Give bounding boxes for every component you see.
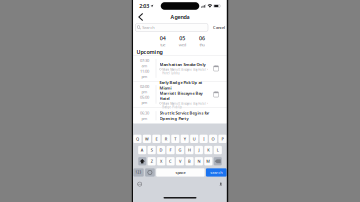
button[interactable]: T — [171, 135, 179, 143]
staticText: 06:30 — [140, 110, 149, 116]
button[interactable]: I — [200, 135, 208, 143]
staticText: tue — [160, 42, 165, 47]
button[interactable]: space — [156, 168, 205, 177]
button[interactable]: U — [190, 135, 198, 143]
staticText: search — [210, 170, 222, 175]
staticText: wed — [179, 42, 186, 47]
button[interactable]: Z — [148, 157, 156, 165]
staticText: Search — [142, 25, 154, 30]
staticText: space — [175, 170, 185, 175]
button[interactable]: S — [148, 146, 156, 154]
button[interactable]: P — [218, 135, 227, 143]
button[interactable]: Y — [181, 135, 189, 143]
button[interactable]: Dictate — [219, 182, 223, 186]
button[interactable]: 05 — [176, 34, 189, 47]
button[interactable]: Change keyboard — [137, 182, 142, 187]
staticText: Miami Marriott Biscayne Bay Hotel • Hote… — [162, 68, 208, 75]
button[interactable]: F — [166, 146, 175, 154]
staticText: am — [142, 63, 148, 68]
staticText: S — [151, 147, 153, 153]
staticText: Y — [184, 136, 186, 141]
button[interactable]: 06 — [195, 34, 208, 47]
button[interactable]: C — [166, 157, 175, 165]
staticText: pm — [142, 89, 148, 94]
staticText: Shuttle Service Begins for Opening Party — [159, 110, 209, 121]
button[interactable]: K — [204, 146, 212, 154]
staticText: U — [193, 136, 196, 141]
button[interactable]: 07:30 — [133, 55, 227, 81]
staticText: 05:00 — [140, 94, 149, 100]
staticText: pm — [142, 100, 148, 105]
staticText: D — [160, 147, 163, 153]
button[interactable]: D — [157, 146, 165, 154]
button[interactable]: 04 — [156, 34, 169, 47]
staticText: R — [165, 136, 167, 141]
button[interactable]: E — [152, 135, 160, 143]
staticText: pm — [142, 116, 148, 121]
staticText: Manhattan Smoke Only — [159, 62, 205, 67]
button[interactable]: B — [185, 157, 193, 165]
staticText: H — [188, 147, 191, 153]
staticText: 02:00 — [140, 84, 149, 89]
staticText: Z — [151, 159, 153, 164]
staticText: C — [169, 159, 172, 164]
button[interactable]: V — [176, 157, 184, 165]
staticText: N — [197, 159, 200, 164]
staticText: B — [188, 159, 191, 164]
button[interactable]: Cancel — [213, 25, 225, 30]
staticText: G — [178, 147, 181, 153]
staticText: 05 — [179, 35, 185, 42]
button[interactable]: Back — [136, 12, 145, 22]
staticText: L — [217, 147, 219, 153]
button[interactable]: H — [185, 146, 193, 154]
staticText: V — [179, 159, 181, 164]
staticText: T — [174, 136, 176, 141]
staticText: Cancel — [213, 25, 225, 30]
button[interactable]: W — [143, 135, 151, 143]
button[interactable]: 123 — [133, 168, 144, 177]
button[interactable]: N — [195, 157, 203, 165]
staticText: thu — [199, 42, 204, 47]
staticText: J — [198, 147, 199, 153]
staticText: O — [212, 136, 215, 141]
button[interactable]: Q — [133, 135, 141, 143]
button[interactable]: L — [214, 146, 222, 154]
button[interactable]: G — [176, 146, 184, 154]
button[interactable]: M — [204, 157, 212, 165]
staticText: Early Badge Pick Up at Miami Marriott Bi… — [159, 80, 202, 101]
button[interactable]: Emoji — [145, 168, 155, 177]
staticText: 04 — [160, 35, 166, 42]
staticText: 2:03 — [139, 2, 149, 10]
staticText: W — [145, 136, 149, 141]
staticText: pm — [142, 74, 148, 79]
button[interactable]: A — [138, 146, 146, 154]
button[interactable]: Shift — [138, 157, 146, 165]
staticText: Agenda — [170, 13, 189, 21]
button[interactable]: search — [206, 168, 227, 177]
staticText: 123 — [136, 171, 142, 174]
staticText: 11:00 — [140, 68, 149, 74]
staticText: E — [155, 136, 157, 141]
staticText: F — [170, 147, 172, 153]
staticText: 06 — [199, 35, 205, 42]
staticText: Q — [136, 136, 139, 141]
staticText: X — [160, 159, 162, 164]
staticText: A — [141, 147, 144, 153]
button[interactable]: R — [162, 135, 170, 143]
staticText: Upcoming — [136, 48, 162, 55]
staticText: P — [221, 136, 223, 141]
staticText: 07:30 — [140, 58, 149, 63]
button[interactable]: Delete — [214, 157, 222, 165]
staticText: Miami Marriott Biscayne Bay Hotel • Badg… — [162, 102, 208, 109]
button[interactable]: J — [195, 146, 203, 154]
button[interactable]: 06:30 — [133, 108, 227, 124]
button[interactable]: O — [209, 135, 217, 143]
staticText: M — [206, 159, 210, 164]
button[interactable]: X — [157, 157, 165, 165]
button[interactable]: 02:00 — [133, 82, 227, 107]
staticText: I — [203, 136, 204, 141]
staticText: K — [207, 147, 209, 153]
